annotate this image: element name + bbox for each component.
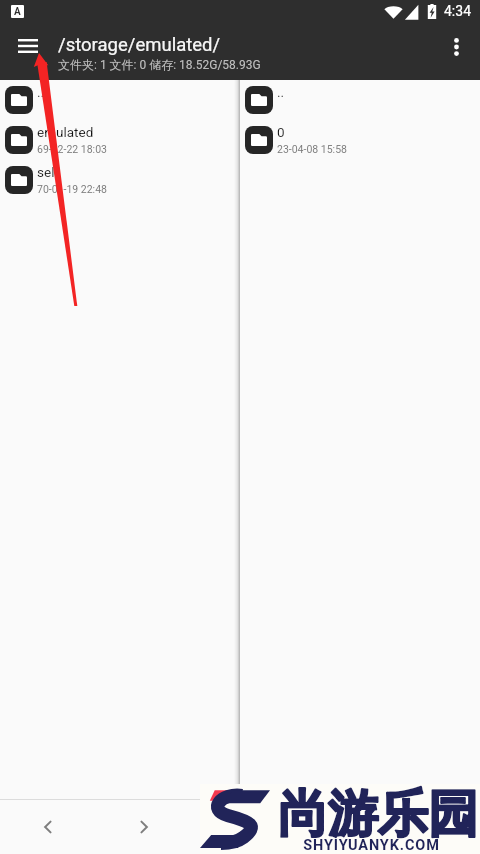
button[interactable]: Menu bbox=[8, 26, 48, 66]
staticText: 尚游乐园 bbox=[278, 783, 478, 846]
button[interactable]: self bbox=[0, 160, 234, 200]
button[interactable]: .. bbox=[240, 80, 480, 120]
button[interactable]: More options bbox=[436, 27, 476, 67]
staticText: 69-12-22 18:03 bbox=[37, 143, 107, 155]
staticText: A bbox=[14, 6, 21, 18]
staticText: 文件夹: 1 文件: 0 储存: 18.52G/58.93G bbox=[58, 57, 261, 72]
staticText: .. bbox=[277, 84, 285, 100]
button[interactable]: .. bbox=[0, 80, 234, 120]
staticText: 0 bbox=[277, 124, 285, 140]
staticText: 23-04-08 15:58 bbox=[277, 143, 347, 155]
staticText: emulated bbox=[37, 124, 94, 140]
staticText: self bbox=[37, 164, 60, 180]
button[interactable]: 0 bbox=[240, 120, 480, 160]
staticText: .. bbox=[37, 84, 45, 100]
staticText: /storage/emulated/ bbox=[58, 34, 221, 56]
button[interactable]: emulated bbox=[0, 120, 234, 160]
staticText: 70-01-19 22:48 bbox=[37, 183, 107, 195]
staticText: 尚游乐园 bbox=[278, 783, 478, 846]
button[interactable]: Forward bbox=[124, 800, 164, 854]
button[interactable]: Back bbox=[28, 800, 68, 854]
staticText: SHYIYUANYK.COM bbox=[303, 837, 440, 854]
staticText: 4:34 bbox=[444, 3, 471, 19]
